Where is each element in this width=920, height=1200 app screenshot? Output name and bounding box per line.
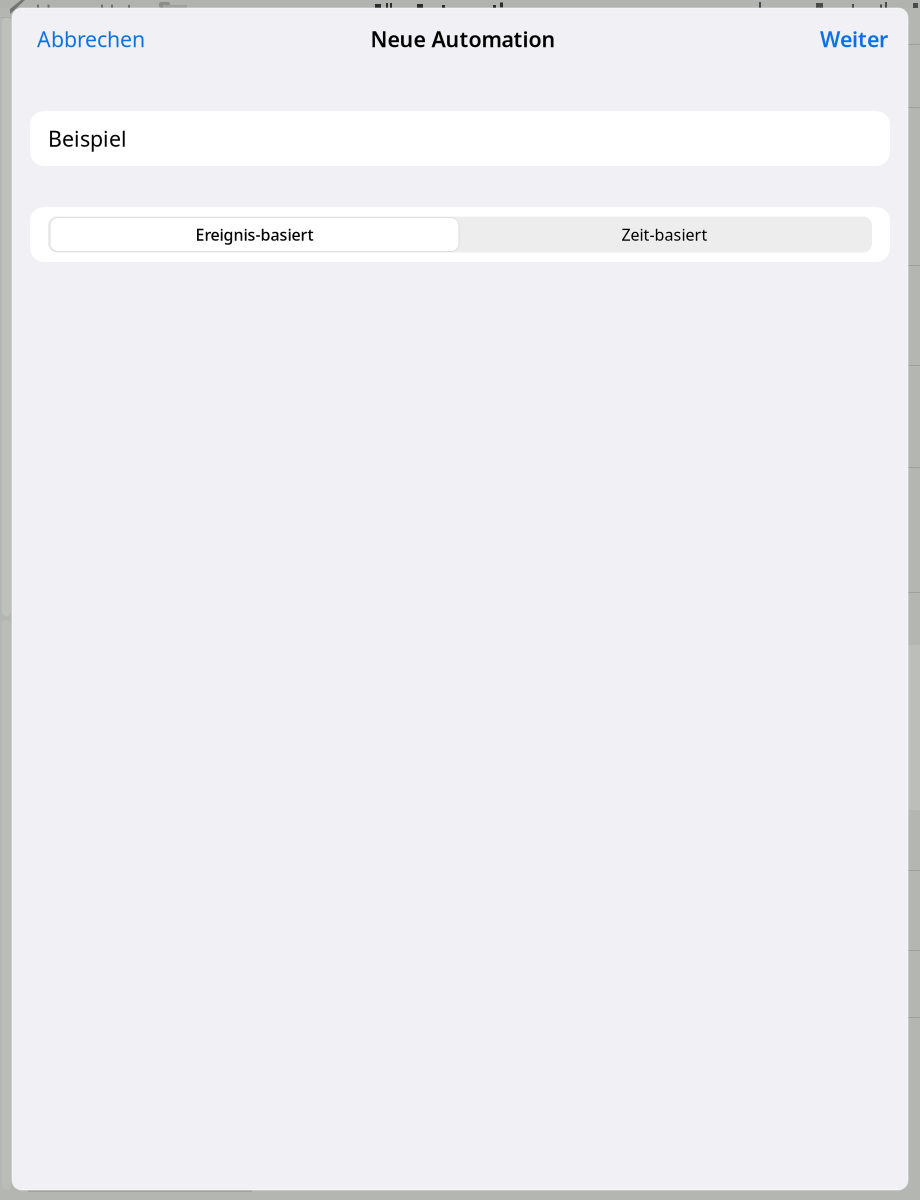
staticText: Beispiel — [48, 124, 127, 153]
button[interactable]: Beispiel — [30, 111, 890, 166]
button[interactable]: Ereignis-basiert — [50, 217, 459, 251]
button[interactable]: Weiter — [800, 8, 908, 70]
button[interactable]: Zeit-basiert — [459, 217, 870, 251]
staticText: Abbrechen — [37, 25, 145, 53]
button[interactable]: Abbrechen — [12, 8, 170, 70]
staticText: Weiter — [820, 25, 888, 53]
staticText: Ereignis-basiert — [195, 224, 313, 245]
staticText: Zeit-basiert — [621, 224, 707, 245]
staticText: Neue Automation — [370, 25, 555, 53]
